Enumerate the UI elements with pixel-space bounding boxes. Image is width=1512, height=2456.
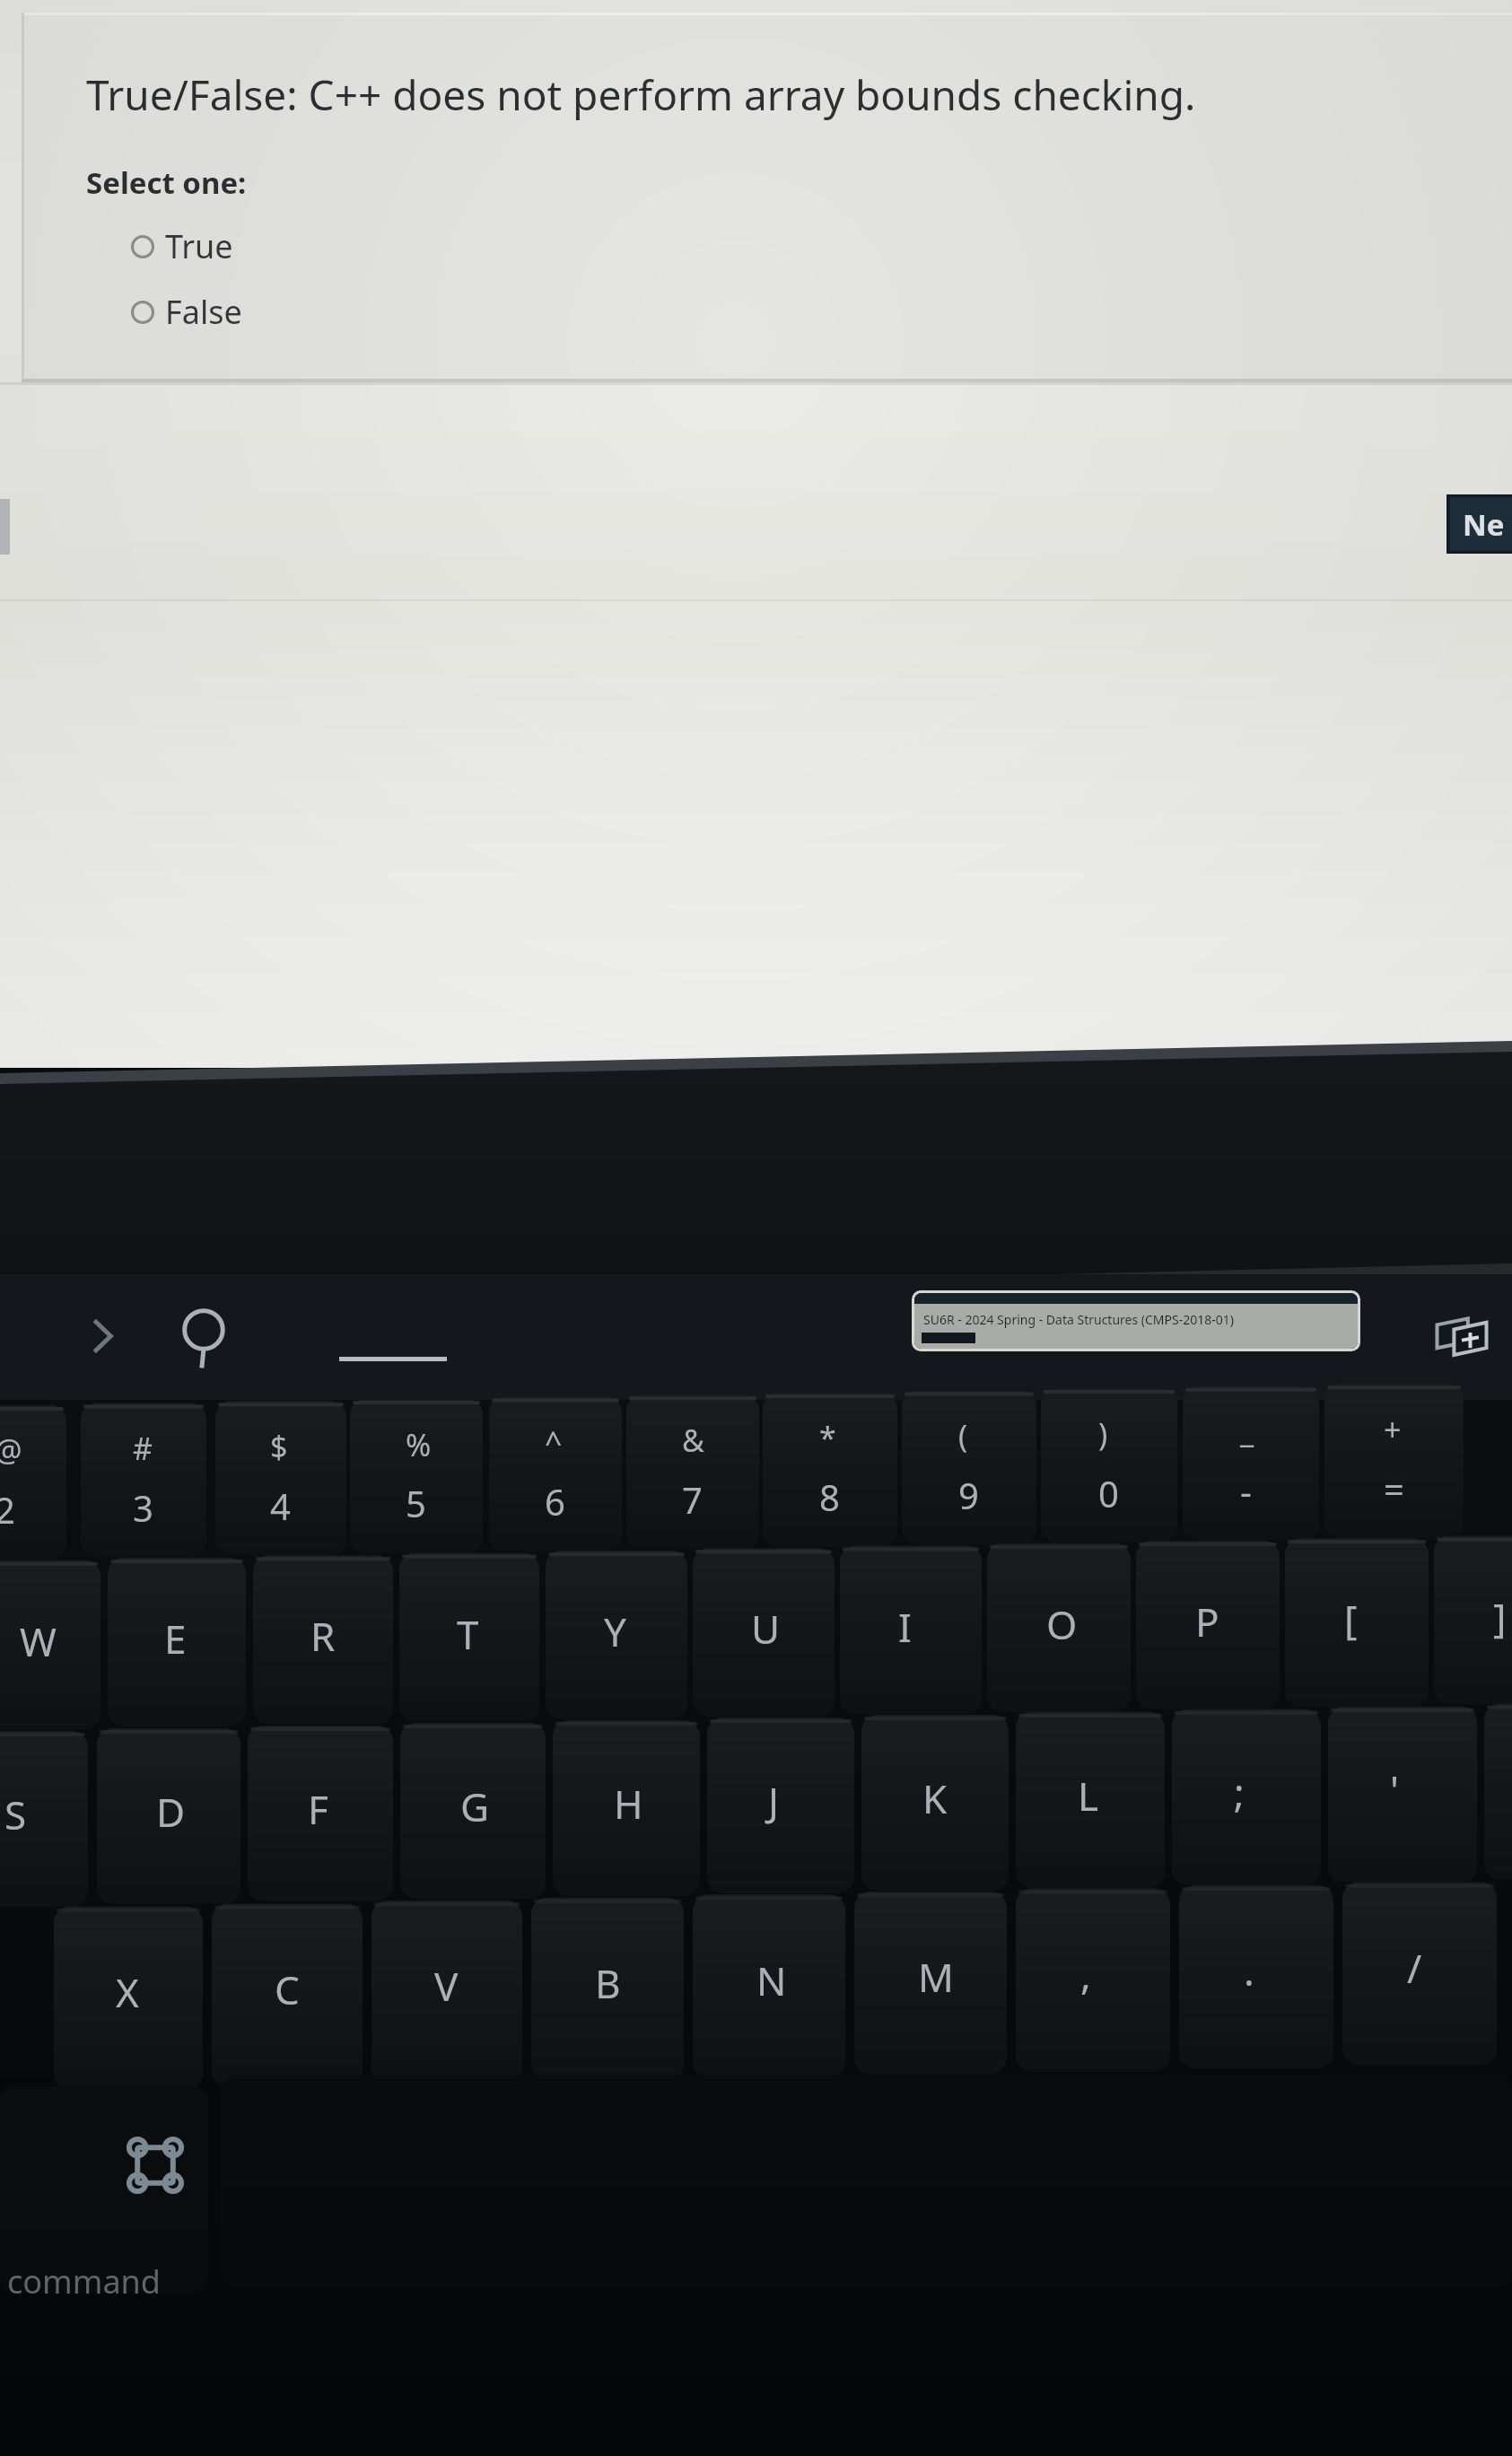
staticText: 5 xyxy=(406,1479,426,1527)
staticText: % xyxy=(406,1424,432,1465)
staticText: 0 xyxy=(1098,1469,1119,1517)
staticText: L xyxy=(1078,1769,1099,1822)
staticText: ' xyxy=(1390,1762,1399,1816)
staticText: True xyxy=(165,224,233,268)
staticText: 6 xyxy=(545,1477,565,1525)
staticText: 7 xyxy=(682,1475,703,1524)
staticText: T xyxy=(457,1607,479,1661)
staticText: 8 xyxy=(819,1473,840,1521)
button[interactable]: Window preview xyxy=(914,1293,1358,1349)
staticText: 3 xyxy=(133,1483,153,1532)
staticText: ^ xyxy=(545,1421,563,1463)
staticText: False xyxy=(165,290,242,334)
staticText: @ xyxy=(0,1429,22,1471)
staticText: W xyxy=(20,1614,57,1668)
staticText: $ xyxy=(270,1426,288,1467)
staticText: C xyxy=(275,1962,300,2016)
staticText: Select one: xyxy=(86,162,247,203)
button[interactable]: Command key xyxy=(126,2136,185,2195)
staticText: P xyxy=(1195,1595,1219,1648)
staticText: 2 xyxy=(0,1485,15,1534)
button[interactable]: False xyxy=(129,286,244,337)
staticText: X xyxy=(116,1965,139,2019)
staticText: I xyxy=(898,1600,912,1654)
staticText: U xyxy=(751,1602,781,1656)
staticText: # xyxy=(133,1428,153,1469)
staticText: Y xyxy=(604,1604,626,1658)
staticText: H xyxy=(614,1777,643,1831)
staticText: K xyxy=(922,1771,948,1825)
staticText: - xyxy=(1240,1466,1252,1515)
staticText: R xyxy=(310,1609,336,1663)
staticText: V xyxy=(434,1959,459,2013)
staticText: B xyxy=(595,1956,621,2010)
staticText: E xyxy=(164,1612,187,1665)
staticText: ; xyxy=(1234,1765,1245,1819)
staticText: ) xyxy=(1098,1413,1108,1455)
staticText: = xyxy=(1384,1464,1404,1513)
staticText: ] xyxy=(1493,1590,1507,1644)
staticText: [ xyxy=(1344,1592,1358,1646)
staticText: G xyxy=(460,1779,490,1833)
staticText: J xyxy=(768,1774,780,1828)
button[interactable]: Next xyxy=(1450,497,1512,551)
staticText: SU6R - 2024 Spring - Data Structures (CM… xyxy=(923,1311,1234,1328)
staticText: ( xyxy=(958,1415,968,1456)
staticText: N xyxy=(756,1953,787,2007)
staticText: , xyxy=(1080,1947,1091,2001)
staticText: command xyxy=(7,2259,161,2303)
staticText: Next xyxy=(1463,504,1512,545)
staticText: D xyxy=(156,1785,186,1839)
staticText: + xyxy=(1384,1409,1402,1450)
button[interactable]: True xyxy=(129,221,235,272)
staticText: _ xyxy=(1240,1411,1254,1452)
staticText: S xyxy=(4,1787,27,1841)
button[interactable]: New window xyxy=(1423,1294,1500,1371)
button[interactable]: Expand control strip xyxy=(72,1305,135,1368)
staticText: & xyxy=(682,1420,704,1461)
staticText: . xyxy=(1244,1944,1254,1997)
staticText: M xyxy=(918,1950,954,2004)
staticText: 4 xyxy=(270,1481,291,1530)
staticText: 9 xyxy=(958,1471,979,1519)
staticText: True/False: C++ does not perform array b… xyxy=(86,66,1196,123)
staticText: / xyxy=(1407,1941,1422,1995)
staticText: * xyxy=(819,1417,836,1458)
staticText: O xyxy=(1046,1597,1078,1651)
staticText: F xyxy=(308,1782,328,1836)
button[interactable]: Search xyxy=(172,1301,240,1369)
